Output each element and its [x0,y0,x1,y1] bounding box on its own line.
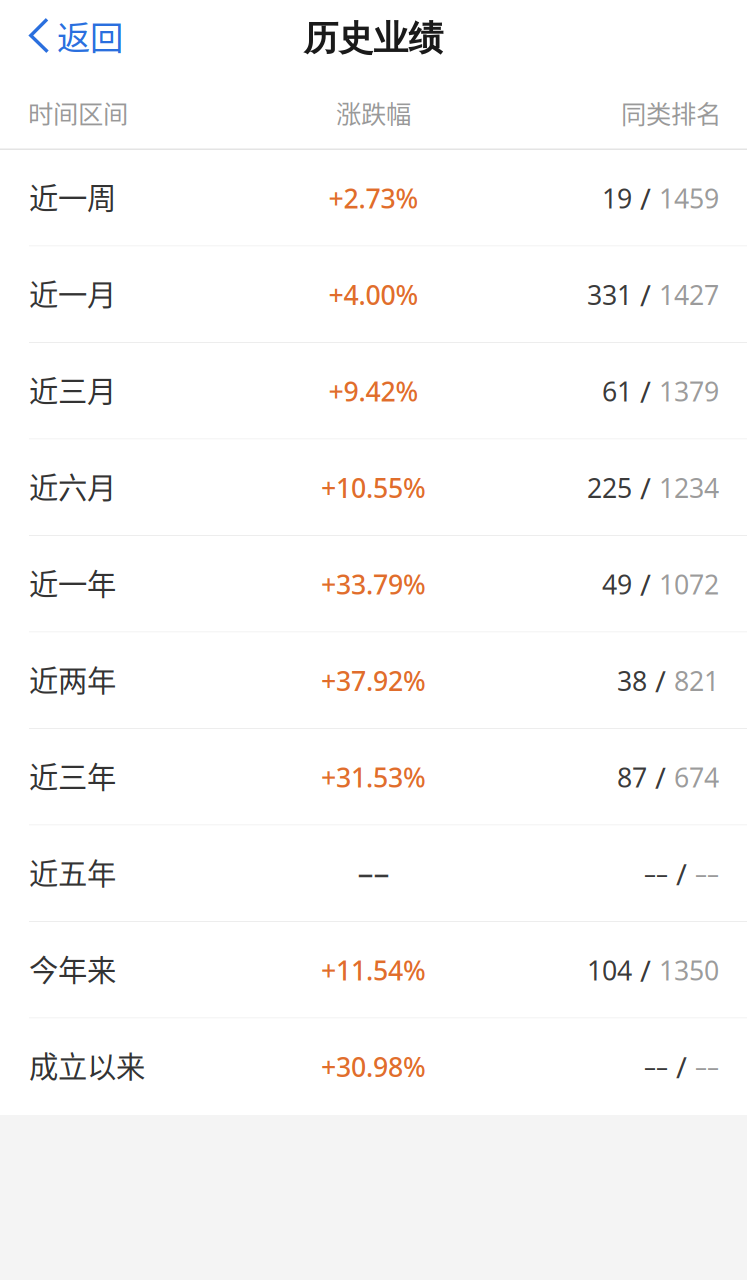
staticText: 87 [617,759,647,795]
staticText: 同类排名 [621,94,721,131]
staticText: / [655,661,666,700]
staticText: +4.00% [328,277,418,312]
staticText: 104 [587,952,632,988]
staticText: 1072 [659,566,719,602]
staticText: –– [644,1050,668,1082]
staticText: 近六月 [29,464,116,507]
staticText: 成立以来 [29,1043,145,1086]
staticText: / [640,565,651,604]
staticText: +10.55% [321,470,426,505]
staticText: / [640,951,651,990]
button[interactable]: 近六月 [0,439,747,536]
staticText: / [640,372,651,411]
staticText: +31.53% [321,759,426,795]
staticText: 近一周 [29,175,116,217]
staticText: / [676,1047,687,1086]
staticText: 19 [602,180,632,216]
staticText: 821 [674,663,719,698]
staticText: –– [644,857,668,889]
button[interactable]: 近一年 [0,536,747,632]
staticText: 历史业绩 [303,17,443,60]
staticText: 近一年 [29,561,116,603]
staticText: / [640,179,651,218]
staticText: +2.73% [328,180,418,216]
staticText: 近三年 [29,754,116,796]
button[interactable]: 近五年 [0,825,747,922]
staticText: / [640,468,651,507]
staticText: 1459 [659,180,719,216]
staticText: 331 [587,277,632,312]
button[interactable]: 近两年 [0,632,747,729]
button[interactable]: 近三月 [0,343,747,439]
staticText: 近两年 [29,657,116,700]
staticText: 涨跌幅 [336,94,411,131]
staticText: 1234 [659,470,719,505]
staticText: 1427 [659,277,719,312]
staticText: 225 [587,470,632,505]
staticText: / [676,854,687,893]
button[interactable]: 返回 [0,0,137,75]
staticText: 1379 [659,373,719,409]
button[interactable]: 今年来 [0,922,747,1018]
button[interactable]: 成立以来 [0,1018,747,1115]
staticText: –– [695,857,719,889]
staticText: 49 [602,566,632,602]
staticText: 今年来 [29,947,116,989]
staticText: 时间区间 [28,94,128,131]
staticText: +33.79% [321,566,426,602]
button[interactable]: 近一月 [0,246,747,343]
staticText: 61 [602,373,632,409]
staticText: +11.54% [321,952,426,988]
staticText: 近五年 [29,850,116,893]
staticText: 返回 [57,11,123,60]
staticText: / [655,758,666,797]
staticText: 近三月 [29,368,116,410]
staticText: +30.98% [321,1049,426,1084]
staticText: +37.92% [321,663,426,698]
button[interactable]: 近三年 [0,729,747,825]
staticText: / [640,275,651,314]
staticText: 38 [617,663,647,698]
staticText: –– [695,1050,719,1082]
staticText: 近一月 [29,271,116,314]
button[interactable]: 近一周 [0,150,747,246]
staticText: 1350 [659,952,719,988]
staticText: +9.42% [328,373,418,409]
staticText: –– [357,851,389,894]
staticText: 674 [674,759,719,795]
